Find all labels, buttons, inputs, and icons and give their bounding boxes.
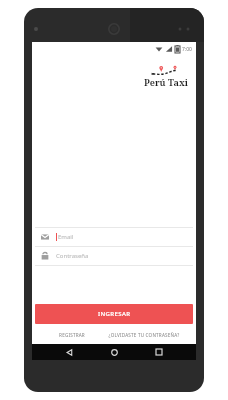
button[interactable]: REGISTRAR — [42, 332, 102, 338]
staticText: Email — [58, 233, 74, 241]
other: Email — [41, 233, 49, 241]
other: Password — [41, 252, 49, 260]
staticText: Contraseña — [56, 252, 89, 260]
staticText: REGISTRAR — [59, 332, 85, 338]
button[interactable]: Email — [35, 228, 193, 246]
staticText: 7:00 — [182, 46, 192, 53]
staticText: INGRESAR — [98, 310, 131, 318]
button[interactable]: Password — [35, 247, 193, 265]
staticText: ¿OLVIDASTE TU CONTRASEÑA? — [108, 332, 180, 338]
button[interactable]: Back — [61, 344, 77, 360]
button[interactable]: INGRESAR — [35, 304, 193, 324]
button[interactable]: Recent apps — [151, 344, 167, 360]
button[interactable]: Home — [106, 344, 122, 360]
button[interactable]: ¿OLVIDASTE TU CONTRASEÑA? — [102, 332, 186, 338]
staticText: Perú Taxi — [144, 76, 188, 88]
